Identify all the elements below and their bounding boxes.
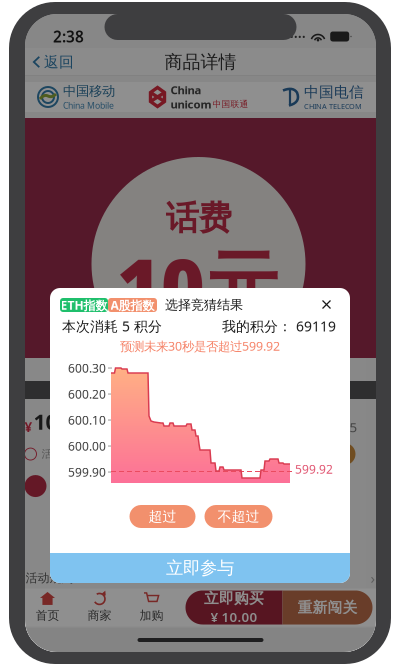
staticText: 立即购买 <box>204 589 264 608</box>
button[interactable]: 不超过 <box>204 505 272 528</box>
staticText: 选择竞猜结果 <box>165 297 243 313</box>
staticText: 商品详情 <box>164 51 236 73</box>
staticText: › <box>370 568 375 588</box>
staticText: 预测未来30秒是否超过599.92 <box>120 338 280 354</box>
staticText: ¥ 10.00 <box>210 608 257 626</box>
staticText: ¥ <box>24 418 32 436</box>
staticText: 599.92 <box>295 461 333 477</box>
staticText: CHINA TELECOM <box>304 101 362 111</box>
staticText: 600.20 <box>68 386 106 402</box>
button[interactable]: 首页 <box>21 588 73 626</box>
staticText: 商家 <box>87 608 111 623</box>
staticText: 中国电信 <box>304 83 364 101</box>
staticText: 中国移动 <box>63 83 115 99</box>
staticText: 2:38 <box>53 26 84 47</box>
staticText: 600.10 <box>68 412 106 428</box>
staticText: 600.30 <box>68 360 106 376</box>
staticText: ETH指数 <box>60 297 107 313</box>
staticText: China <box>170 82 201 97</box>
staticText: 返回 <box>44 53 74 71</box>
button[interactable]: 加购 <box>125 588 177 626</box>
staticText: 首页 <box>35 608 59 623</box>
staticText: •••• <box>290 30 306 43</box>
staticText: 超过 <box>148 508 176 525</box>
staticText: unicom <box>170 96 211 112</box>
staticText: 重新闯关 <box>297 598 357 617</box>
staticText: 我的积分： 69119 <box>222 317 336 335</box>
staticText: 立即参与 <box>166 557 234 579</box>
button[interactable]: 返回 <box>25 47 82 77</box>
staticText: 10元 <box>117 233 280 335</box>
button[interactable]: 立即购买 <box>185 590 372 624</box>
staticText: 活动规则 <box>25 570 73 585</box>
staticText: 加购 <box>139 608 163 623</box>
button[interactable]: Close <box>314 294 339 315</box>
staticText: 活动 <box>41 447 63 461</box>
staticText: 本次消耗 5 积分 <box>62 317 162 335</box>
staticText: 599.90 <box>68 464 106 480</box>
staticText: 10 <box>33 407 57 436</box>
staticText: 话费 <box>165 197 231 239</box>
staticText: 5 <box>349 418 357 436</box>
staticText: 600.00 <box>68 438 106 454</box>
staticText: 中国联通 <box>212 99 248 110</box>
staticText: 不超过 <box>217 508 259 525</box>
staticText: A股指数 <box>110 297 154 313</box>
staticText: China Mobile <box>63 99 114 111</box>
button[interactable]: 超过 <box>129 505 195 528</box>
button[interactable]: 商家 <box>73 588 125 626</box>
button[interactable]: 立即参与 <box>50 553 350 583</box>
